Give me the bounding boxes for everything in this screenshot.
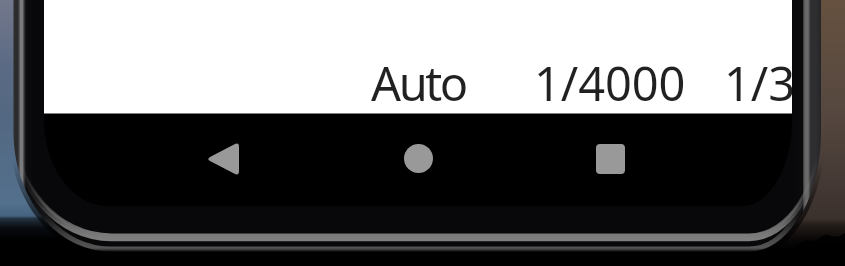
button[interactable]: 1/4000 (534, 51, 686, 114)
button[interactable]: Home (386, 126, 450, 190)
staticText: 1/3200 (724, 51, 792, 114)
button[interactable]: Recent apps (578, 127, 642, 191)
staticText: 1/4000 (534, 51, 686, 114)
button[interactable]: Auto (371, 51, 466, 114)
button[interactable]: 1/3200 (724, 51, 792, 114)
button[interactable]: Back (190, 127, 254, 191)
staticText: Auto (371, 51, 466, 114)
